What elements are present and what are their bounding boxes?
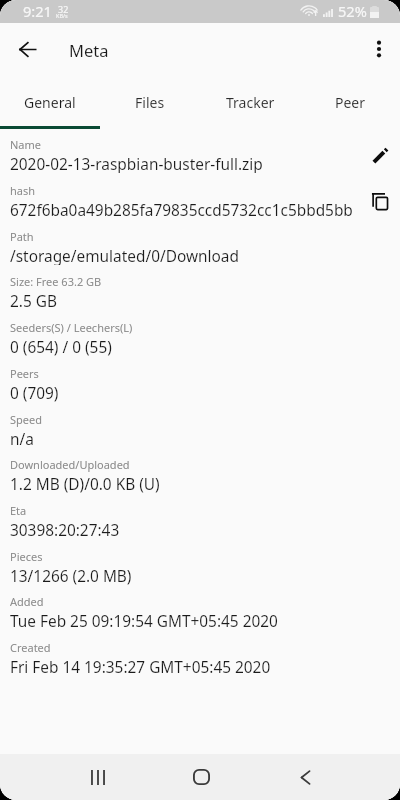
button[interactable]: Created (10, 640, 400, 676)
staticText: 30398:20:27:43 (10, 520, 120, 539)
button[interactable]: Tracker (200, 79, 300, 125)
staticText: Files (135, 93, 165, 112)
button[interactable]: Seeders(S) / Leechers(L) (10, 320, 400, 356)
staticText: Path (10, 229, 34, 244)
button[interactable]: Copy hash (355, 179, 399, 223)
staticText: Size: Free 63.2 GB (10, 274, 102, 289)
staticText: Fri Feb 14 19:35:27 GMT+05:45 2020 (10, 657, 271, 676)
staticText: Eta (10, 503, 27, 518)
staticText: Peer (335, 93, 366, 112)
button[interactable]: Files (100, 79, 200, 125)
staticText: 9:21 (23, 1, 52, 21)
button[interactable]: General (0, 79, 100, 125)
staticText: 32 (58, 3, 69, 15)
button[interactable]: Speed (10, 412, 400, 448)
staticText: 672f6ba0a49b285fa79835ccd5732cc1c5bbd5bb (10, 200, 353, 219)
button[interactable]: More options (355, 25, 400, 73)
button[interactable]: Downloaded/Uploaded (10, 457, 400, 493)
staticText: Tue Feb 25 09:19:54 GMT+05:45 2020 (10, 611, 278, 630)
staticText: Name (10, 137, 42, 152)
staticText: 0 (654) / 0 (55) (10, 337, 112, 356)
staticText: 0 (709) (10, 383, 59, 402)
staticText: Tracker (226, 93, 275, 112)
staticText: Peers (10, 366, 39, 381)
staticText: Created (10, 640, 51, 655)
staticText: Seeders(S) / Leechers(L) (10, 320, 133, 335)
staticText: hash (10, 183, 36, 198)
button[interactable]: Path (10, 229, 400, 265)
staticText: n/a (10, 429, 34, 448)
button[interactable]: hash (10, 183, 400, 219)
staticText: 13/1266 (2.0 MB) (10, 566, 132, 585)
staticText: 1.2 MB (D)/0.0 KB (U) (10, 474, 160, 493)
staticText: Speed (10, 412, 42, 427)
staticText: /storage/emulated/0/Download (10, 246, 239, 265)
button[interactable]: Peers (10, 366, 400, 402)
button[interactable]: Added (10, 594, 400, 630)
staticText: 2020-02-13-raspbian-buster-full.zip (10, 154, 263, 173)
button[interactable]: Peer (300, 79, 400, 125)
button[interactable]: Eta (10, 503, 400, 539)
staticText: General (24, 93, 76, 112)
button[interactable]: Home (171, 754, 232, 800)
staticText: KB/s (56, 12, 68, 19)
staticText: 2.5 GB (10, 291, 57, 310)
staticText: 52% (338, 1, 367, 21)
button[interactable]: Back (3, 25, 51, 73)
staticText: Added (10, 594, 44, 609)
button[interactable]: Edit name (355, 133, 399, 177)
button[interactable]: Pieces (10, 549, 400, 585)
button[interactable]: Size: Free 63.2 GB (10, 274, 400, 310)
button[interactable]: Recent apps (67, 754, 128, 800)
button[interactable]: Back (275, 754, 336, 800)
staticText: Pieces (10, 549, 43, 564)
button[interactable]: Name (10, 137, 400, 173)
staticText: Meta (69, 39, 109, 61)
staticText: Downloaded/Uploaded (10, 457, 130, 472)
